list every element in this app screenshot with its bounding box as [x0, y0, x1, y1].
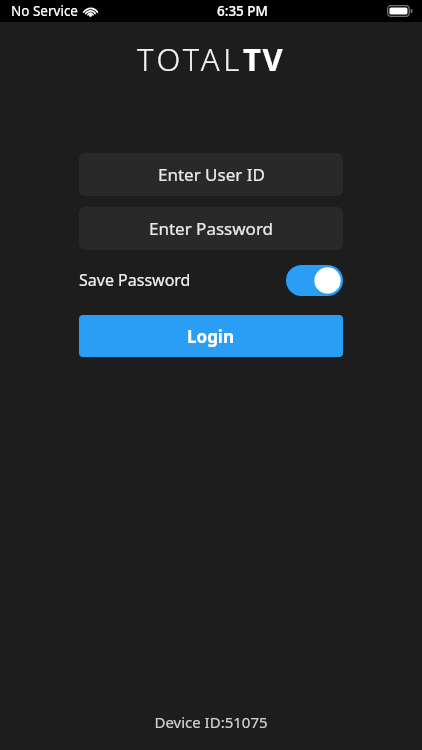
staticText: Save Password: [79, 269, 191, 291]
button[interactable]: Login: [79, 315, 343, 357]
staticText: TOTAL: [137, 38, 243, 72]
staticText: 6:35 PM: [217, 2, 268, 20]
button[interactable]: Enter User ID: [79, 153, 343, 196]
staticText: TV: [243, 38, 285, 72]
button[interactable]: Enter Password: [79, 207, 343, 250]
staticText: Login: [187, 325, 235, 348]
button[interactable]: Save Password toggle, on: [286, 265, 343, 296]
staticText: No Service: [11, 2, 78, 20]
staticText: Device ID:51075: [0, 712, 422, 732]
staticText: Enter Password: [149, 217, 274, 240]
staticText: Enter User ID: [158, 163, 265, 186]
